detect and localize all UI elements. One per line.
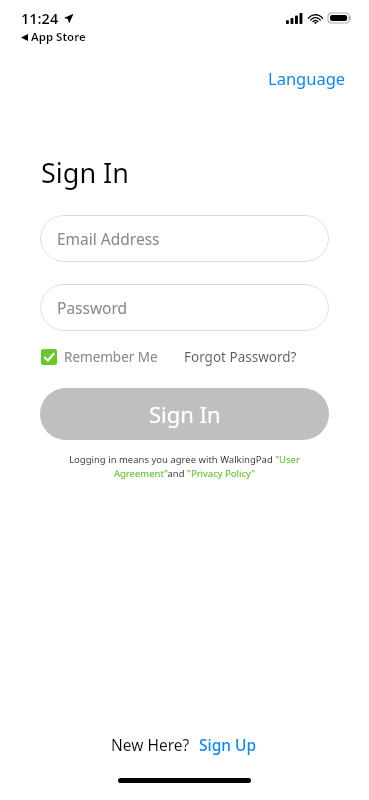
staticText: App Store xyxy=(31,29,86,45)
button[interactable]: Forgot Password? xyxy=(184,345,297,369)
button[interactable]: Email Address xyxy=(40,215,329,262)
other: Remember Me checked xyxy=(41,349,57,365)
staticText: 11:24 xyxy=(21,8,59,28)
staticText: Forgot Password? xyxy=(184,348,297,366)
button[interactable]: Password xyxy=(40,284,329,331)
staticText: Logging in means you agree with WalkingP… xyxy=(39,453,330,480)
staticText: Sign Up xyxy=(199,734,257,755)
staticText: Language xyxy=(268,67,346,89)
button[interactable]: Language xyxy=(264,65,350,91)
staticText: Sign In xyxy=(41,154,129,191)
button[interactable]: Back to App Store xyxy=(21,29,86,45)
staticText: Remember Me xyxy=(64,348,158,366)
staticText: New Here? xyxy=(111,734,190,755)
staticText: Password xyxy=(57,297,128,318)
button[interactable]: Sign Up xyxy=(197,732,259,757)
staticText: Email Address xyxy=(57,228,160,249)
button[interactable]: Sign In xyxy=(40,388,329,440)
staticText: Sign In xyxy=(149,399,221,429)
button[interactable]: Remember Me checked xyxy=(41,345,158,369)
